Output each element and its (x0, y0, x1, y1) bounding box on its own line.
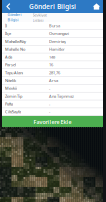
staticText: Demirtaş (49, 39, 66, 44)
staticText: Parsel (5, 62, 16, 67)
staticText: Zemin Tip (5, 93, 22, 99)
staticText: Bursa (49, 23, 60, 28)
staticText: Mahalle No (5, 46, 25, 52)
button[interactable]: Gönderi Bilgisi (2, 13, 27, 22)
button[interactable]: Favorilere Ekle (2, 116, 103, 128)
staticText: Tapu Alanı (5, 70, 23, 75)
staticText: 148 (49, 54, 55, 60)
staticText: Hamitler (49, 46, 65, 52)
staticText: 16 (49, 62, 53, 67)
staticText: Mahalle/Köy (5, 39, 26, 44)
button[interactable]: Home (90, 0, 103, 13)
staticText: 281,76 (49, 70, 60, 75)
staticText: Ada (5, 54, 12, 60)
staticText: İl (5, 23, 7, 28)
button[interactable]: Sevkiyat Listesi (27, 13, 52, 22)
staticText: Ana Taşınmaz (49, 93, 74, 99)
staticText: Sevkiyat Listesi (32, 12, 46, 23)
staticText: Favorilere Ekle (33, 118, 71, 125)
staticText: Cilt/Sayfa (5, 109, 21, 114)
staticText: Mevkii (5, 86, 17, 91)
staticText: Osmangazi (49, 31, 69, 36)
staticText: - (49, 109, 50, 114)
staticText: - (49, 86, 50, 91)
staticText: Gönderi Bilgisi (29, 2, 76, 11)
staticText: Gönderi Bilgisi (7, 12, 21, 22)
staticText: Arsa (49, 78, 58, 83)
staticText: Pafta (5, 101, 13, 107)
button[interactable]: Back (2, 0, 15, 13)
staticText: - (49, 101, 50, 107)
staticText: Nitelik (5, 78, 16, 83)
staticText: İlçe (5, 31, 11, 36)
